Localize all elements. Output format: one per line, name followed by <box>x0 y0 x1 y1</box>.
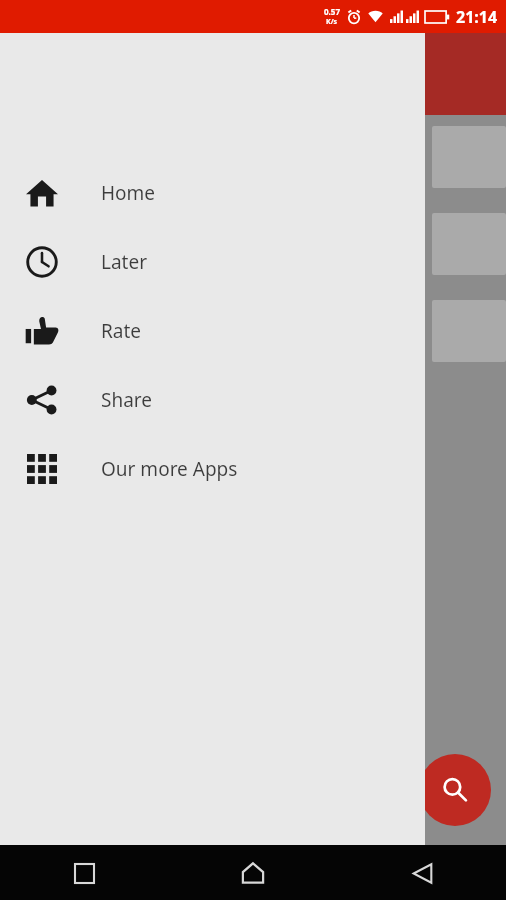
button[interactable]: Search <box>419 754 491 826</box>
staticText: Home <box>101 180 156 206</box>
staticText: 21:14 <box>456 6 498 28</box>
button[interactable]: Our more Apps <box>0 434 425 503</box>
button[interactable]: Later <box>0 227 425 296</box>
button[interactable]: Share <box>0 365 425 434</box>
button[interactable]: Home <box>229 849 277 897</box>
button[interactable]: Back <box>398 849 446 897</box>
staticText: Later <box>101 249 148 275</box>
staticText: Rate <box>101 318 142 344</box>
staticText: Share <box>101 387 153 413</box>
button[interactable]: Home <box>0 158 425 227</box>
staticText: K/s <box>326 17 338 27</box>
button[interactable]: Rate <box>0 296 425 365</box>
button[interactable]: Recents <box>60 849 108 897</box>
staticText: 0.57 <box>324 6 340 17</box>
staticText: Our more Apps <box>101 456 238 482</box>
